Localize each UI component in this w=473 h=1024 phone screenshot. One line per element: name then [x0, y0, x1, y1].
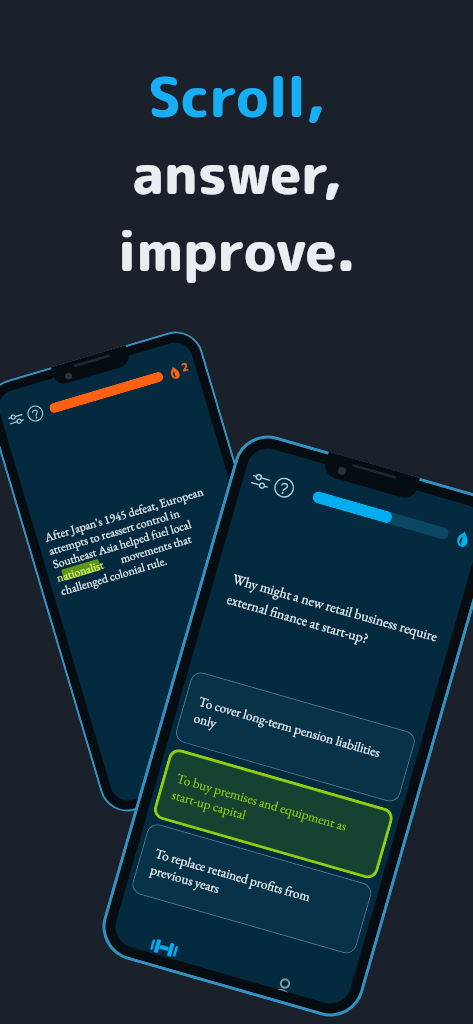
button[interactable]: To buy premises and equipment as start-u…	[151, 747, 395, 881]
staticText: To buy premises and equipment as start-u…	[170, 770, 376, 859]
button[interactable]: Help	[272, 475, 296, 500]
button[interactable]: Settings	[250, 473, 270, 490]
staticText: To cover long-term pension liabilities o…	[192, 693, 398, 782]
staticText: Why might a new retail business require …	[225, 569, 443, 666]
button[interactable]: Settings	[8, 412, 24, 426]
staticText: answer,	[132, 135, 342, 212]
staticText: After Japan's 1945 defeat, European atte…	[43, 483, 221, 598]
button[interactable]: Help	[25, 403, 45, 423]
button[interactable]: Practice	[149, 937, 179, 959]
staticText: improve.	[117, 212, 356, 289]
staticText: To replace retained profits from previou…	[148, 845, 355, 934]
button[interactable]: Profile	[275, 977, 294, 993]
staticText: 2	[179, 358, 191, 376]
button[interactable]: To replace retained profits from previou…	[130, 822, 374, 956]
staticText: Scroll,	[148, 58, 325, 135]
button[interactable]: To cover long-term pension liabilities o…	[173, 670, 417, 804]
